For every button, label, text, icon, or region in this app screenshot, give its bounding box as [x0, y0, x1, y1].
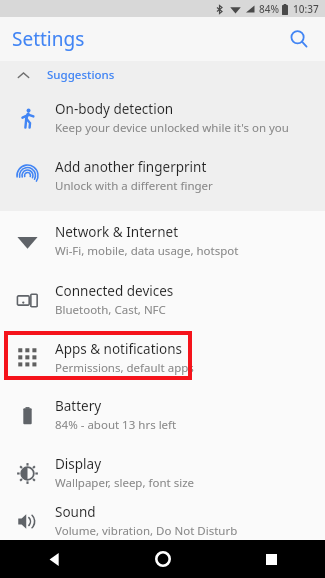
button[interactable]: Sound — [0, 502, 325, 540]
staticText: On-body detection — [55, 100, 174, 118]
button[interactable]: Battery — [0, 386, 325, 444]
staticText: Settings — [12, 26, 85, 52]
staticText: Bluetooth, Cast, NFC — [55, 302, 166, 318]
button[interactable]: Home — [109, 540, 217, 578]
staticText: Permissions, default apps — [55, 360, 194, 376]
button[interactable]: Back — [0, 540, 109, 578]
staticText: Wi-Fi, mobile, data usage, hotspot — [55, 243, 239, 259]
staticText: Apps & notifications — [55, 340, 182, 358]
staticText: Connected devices — [55, 282, 174, 300]
staticText: Volume, vibration, Do Not Disturb — [55, 523, 238, 539]
staticText: Unlock with a different finger — [55, 178, 213, 194]
button[interactable]: Search — [281, 21, 317, 57]
staticText: 10:37 — [293, 2, 319, 16]
staticText: Suggestions — [47, 67, 115, 83]
staticText: Wallpaper, sleep, font size — [55, 475, 195, 491]
button[interactable]: Apps & notifications — [0, 329, 325, 386]
button[interactable]: Recents — [217, 540, 325, 578]
button[interactable]: Suggestions — [0, 61, 325, 89]
staticText: Network & Internet — [55, 223, 179, 241]
staticText: Battery — [55, 397, 102, 415]
staticText: 84% - about 13 hrs left — [55, 417, 177, 433]
staticText: Display — [55, 455, 102, 473]
button[interactable]: Connected devices — [0, 271, 325, 329]
staticText: Add another fingerprint — [55, 158, 207, 176]
button[interactable]: Network & Internet — [0, 211, 325, 271]
staticText: Keep your device unlocked while it's on … — [55, 120, 289, 136]
button[interactable]: On-body detection — [0, 89, 325, 147]
button[interactable]: Add another fingerprint — [0, 147, 325, 204]
staticText: Sound — [55, 503, 96, 521]
staticText: 84% — [259, 2, 279, 16]
button[interactable]: Display — [0, 444, 325, 502]
